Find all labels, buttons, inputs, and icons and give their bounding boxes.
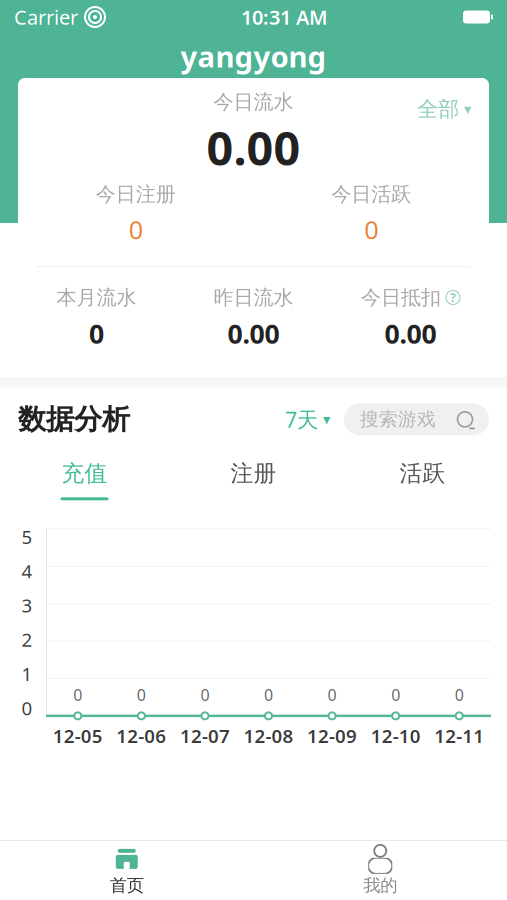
- staticText: 0: [73, 684, 82, 705]
- staticText: Carrier: [14, 4, 78, 30]
- staticText: 昨日流水: [213, 285, 293, 310]
- button[interactable]: 充值: [0, 455, 169, 504]
- staticText: 0: [364, 213, 378, 246]
- staticText: 12-06: [116, 723, 166, 748]
- staticText: 2: [21, 627, 32, 652]
- staticText: ▾: [323, 411, 330, 428]
- staticText: 1: [21, 661, 32, 686]
- staticText: 12-10: [371, 723, 421, 748]
- staticText: 充值: [61, 459, 107, 487]
- button[interactable]: 活跃: [338, 455, 507, 504]
- staticText: 0: [89, 316, 104, 351]
- staticText: 0: [200, 684, 209, 705]
- staticText: 注册: [230, 459, 276, 487]
- staticText: 12-05: [53, 723, 103, 748]
- staticText: ?: [450, 289, 456, 305]
- button[interactable]: 今日抵扣说明: [446, 290, 460, 304]
- staticText: 0: [137, 684, 146, 705]
- staticText: yangyong: [180, 36, 326, 75]
- staticText: 0: [391, 684, 400, 705]
- button[interactable]: 注册: [169, 455, 338, 504]
- staticText: 3: [21, 593, 32, 618]
- staticText: 数据分析: [18, 402, 130, 437]
- staticText: 我的: [363, 875, 397, 896]
- staticText: 今日流水: [213, 90, 293, 114]
- staticText: 全部: [417, 96, 459, 122]
- button[interactable]: 我的: [253, 837, 507, 900]
- staticText: 0.00: [384, 316, 436, 351]
- staticText: 今日注册: [96, 182, 176, 207]
- staticText: 0: [21, 696, 32, 720]
- staticText: 12-08: [243, 723, 293, 748]
- button[interactable]: 7天: [283, 401, 332, 437]
- staticText: 0: [129, 213, 143, 246]
- staticText: 5: [21, 524, 32, 549]
- staticText: 今日活跃: [331, 182, 411, 207]
- staticText: 0: [264, 684, 273, 705]
- staticText: 活跃: [399, 459, 445, 487]
- button[interactable]: 搜索游戏: [344, 403, 489, 435]
- staticText: 搜索游戏: [360, 408, 436, 431]
- staticText: 今日抵扣: [361, 285, 441, 310]
- staticText: 0: [455, 684, 464, 705]
- staticText: 12-11: [434, 723, 484, 748]
- staticText: 4: [21, 559, 32, 583]
- staticText: 0.00: [227, 316, 279, 351]
- staticText: 0.00: [206, 116, 300, 178]
- staticText: 12-09: [307, 723, 357, 748]
- button[interactable]: 全部: [413, 92, 475, 126]
- staticText: 首页: [110, 875, 144, 896]
- button[interactable]: 首页: [0, 837, 253, 900]
- staticText: 10:31 AM: [241, 4, 328, 30]
- staticText: 本月流水: [56, 285, 136, 310]
- staticText: 0: [328, 684, 337, 705]
- staticText: 7天: [285, 405, 318, 433]
- staticText: 12-07: [180, 723, 230, 748]
- staticText: ▾: [464, 101, 471, 117]
